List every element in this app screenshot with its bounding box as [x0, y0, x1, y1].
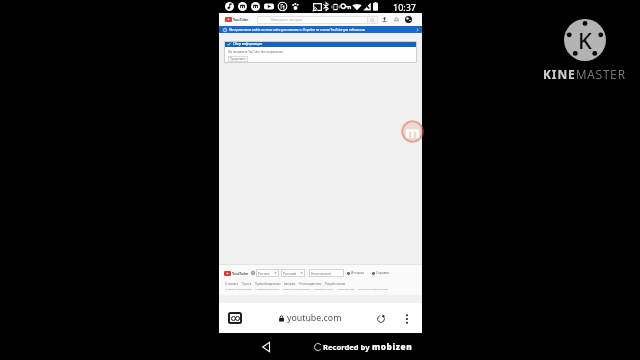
button[interactable]: Тестируйте новые функции — [358, 288, 389, 291]
staticText: YouTube — [233, 17, 249, 22]
button[interactable]: YouTube — [224, 271, 249, 276]
button[interactable]: Русский — [281, 269, 305, 277]
button[interactable]: Правила и безопасность — [283, 288, 311, 291]
button[interactable]: Правообладателям — [255, 282, 281, 286]
button[interactable]: Back — [258, 339, 274, 355]
button[interactable]: Upload video — [380, 15, 389, 24]
button[interactable]: Tabs — [228, 312, 242, 324]
button[interactable]: Введите запрос — [257, 16, 378, 24]
button[interactable]: YouTube — [225, 17, 249, 22]
staticText: Введите запрос — [271, 17, 303, 23]
button[interactable]: Конфиденциальность — [255, 288, 280, 291]
staticText: Безопасный режим: выкл. — [311, 271, 342, 276]
staticText: KINE — [543, 66, 576, 82]
staticText: youtube.com — [287, 312, 342, 324]
button[interactable]: Россия — [251, 269, 279, 277]
button[interactable]: Пресса — [242, 282, 252, 286]
button[interactable]: Продолжить — [228, 56, 248, 62]
button[interactable]: Reload page — [374, 312, 387, 325]
button[interactable]: Справка — [371, 269, 390, 277]
button[interactable]: Рекламодателям — [299, 282, 322, 286]
button[interactable]: Мы применяем cookie на этом сайте для ан… — [219, 26, 422, 33]
staticText: Россия — [258, 271, 270, 276]
button[interactable]: Авторам — [284, 282, 296, 286]
button[interactable]: Безопасный режим: выкл. — [309, 269, 344, 277]
button[interactable]: Разработчикам — [325, 282, 346, 286]
button[interactable]: Account — [404, 15, 413, 24]
staticText: Справка — [376, 271, 389, 275]
button[interactable]: youtube.com — [279, 312, 342, 324]
staticText: YouTube — [232, 271, 249, 276]
button[interactable]: История — [346, 269, 366, 277]
staticText: Мы применяем cookie на этом сайте для ан… — [229, 28, 365, 32]
staticText: MASTER — [576, 66, 626, 82]
button[interactable]: Россия — [256, 269, 279, 277]
button[interactable]: Notifications — [392, 15, 401, 24]
button[interactable]: More options — [401, 313, 412, 324]
button[interactable]: Отправить отзыв — [314, 288, 334, 291]
staticText: m — [405, 122, 421, 142]
staticText: 10:37 — [393, 1, 417, 13]
staticText: Продолжить — [230, 57, 246, 61]
button[interactable]: Новые функции — [337, 288, 355, 291]
staticText: История — [351, 271, 365, 275]
button[interactable]: О сервисе — [225, 282, 239, 286]
staticText: mobizen — [372, 341, 413, 352]
staticText: Русский — [283, 271, 296, 276]
staticText: Вы покидаете YouTube без сохранения. — [228, 50, 284, 54]
staticText: Сбор информации — [233, 42, 263, 46]
button[interactable]: Условия использования — [225, 288, 252, 291]
staticText: Recorded by — [323, 342, 370, 352]
staticText: K — [578, 25, 592, 55]
